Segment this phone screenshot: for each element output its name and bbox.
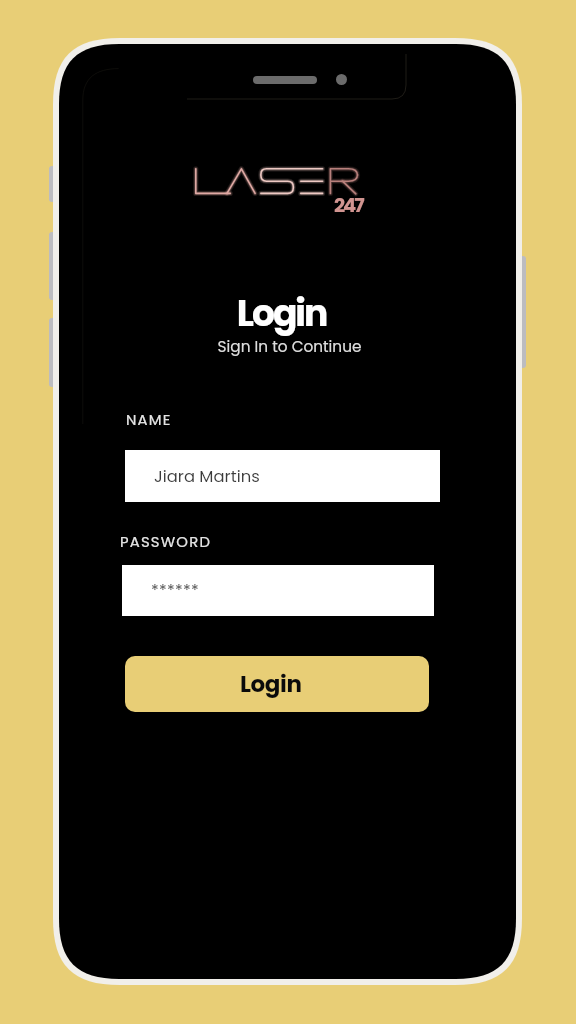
button[interactable]: Password input field	[122, 565, 434, 616]
staticText: Login	[240, 668, 302, 700]
staticText: Sign In to Continue	[61, 336, 516, 357]
staticText: Login	[59, 288, 510, 338]
staticText: 247	[334, 192, 363, 219]
staticText: Jiara Martins	[154, 465, 260, 488]
staticText: NAME	[126, 409, 172, 430]
button[interactable]: Login	[125, 656, 429, 712]
button[interactable]: Name input field	[125, 450, 440, 502]
staticText: PASSWORD	[120, 531, 212, 552]
staticText: ******	[151, 579, 199, 601]
